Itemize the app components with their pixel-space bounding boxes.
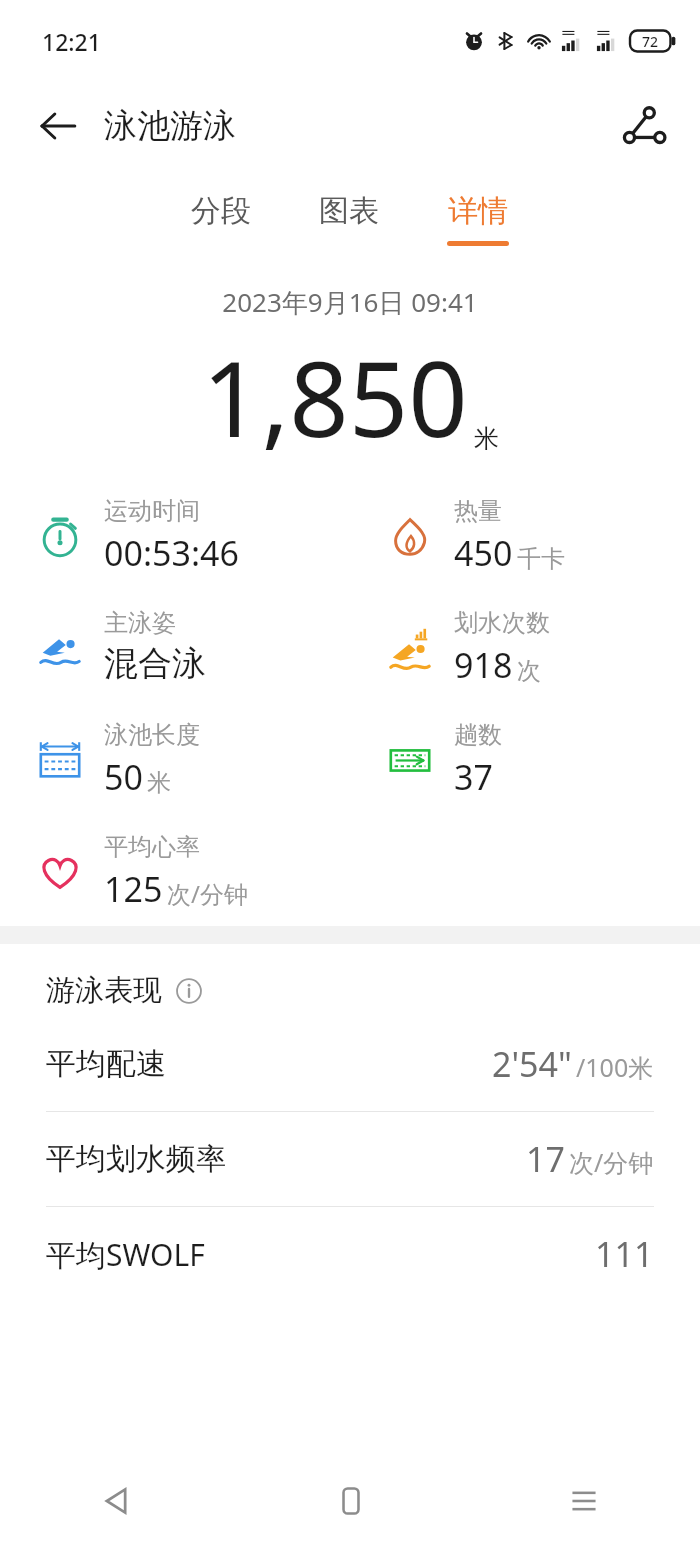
staticText: 游泳表现 xyxy=(46,972,162,1009)
staticText: 450 xyxy=(454,530,513,576)
button[interactable]: Home xyxy=(234,1447,467,1555)
staticText: 平均划水频率 xyxy=(46,1140,226,1178)
staticText: 泳池游泳 xyxy=(104,105,236,147)
staticText: 分段 xyxy=(191,192,251,230)
staticText: 划水次数 xyxy=(454,608,550,638)
staticText: 2'54" xyxy=(492,1041,572,1087)
staticText: 平均配速 xyxy=(46,1045,166,1083)
button[interactable]: 图表 xyxy=(313,170,385,241)
button[interactable]: 趟数 xyxy=(350,720,700,800)
button[interactable]: Menu xyxy=(467,1447,700,1555)
staticText: 12:21 xyxy=(42,26,101,57)
staticText: 热量 xyxy=(454,496,502,526)
button[interactable]: Share xyxy=(612,94,676,158)
staticText: 次 xyxy=(517,656,541,686)
button[interactable]: 平均配速 xyxy=(0,1017,700,1112)
button[interactable]: 运动时间 xyxy=(0,496,350,576)
button[interactable]: 泳池长度 xyxy=(0,720,350,800)
button[interactable]: 平均划水频率 xyxy=(0,1112,700,1207)
staticText: 平均SWOLF xyxy=(46,1234,205,1275)
staticText: 主泳姿 xyxy=(104,608,176,638)
staticText: 次/分钟 xyxy=(569,1145,654,1179)
staticText: 米 xyxy=(474,423,499,454)
button[interactable]: 平均SWOLF xyxy=(0,1207,700,1301)
button[interactable]: 主泳姿 xyxy=(0,608,350,685)
button[interactable]: 平均心率 xyxy=(0,832,350,912)
staticText: 图表 xyxy=(319,192,379,230)
staticText: 详情 xyxy=(448,192,508,230)
staticText: 2023年9月16日 09:41 xyxy=(0,284,700,320)
button[interactable]: 详情 xyxy=(441,170,515,246)
button[interactable]: Back xyxy=(0,1447,234,1555)
staticText: 50 xyxy=(104,754,143,800)
button[interactable]: 分段 xyxy=(185,170,257,241)
staticText: 趟数 xyxy=(454,720,502,750)
staticText: 泳池长度 xyxy=(104,720,200,750)
staticText: 111 xyxy=(595,1231,654,1277)
staticText: 运动时间 xyxy=(104,496,200,526)
staticText: 37 xyxy=(454,754,493,800)
button[interactable]: Back xyxy=(30,98,86,154)
staticText: 17 xyxy=(526,1136,565,1182)
staticText: 72 xyxy=(642,32,659,51)
staticText: 918 xyxy=(454,642,513,688)
button[interactable]: 划水次数 xyxy=(350,608,700,688)
staticText: 00:53:46 xyxy=(104,530,239,576)
staticText: 米 xyxy=(147,768,171,798)
staticText: 平均心率 xyxy=(104,832,200,862)
button[interactable]: Info xyxy=(172,974,206,1008)
staticText: /100米 xyxy=(576,1050,654,1084)
staticText: 混合泳 xyxy=(104,642,206,685)
staticText: 次/分钟 xyxy=(167,877,248,910)
staticText: 125 xyxy=(104,866,163,912)
staticText: 千卡 xyxy=(517,544,565,574)
button[interactable]: 热量 xyxy=(350,496,700,576)
staticText: 1,850 xyxy=(202,326,468,468)
